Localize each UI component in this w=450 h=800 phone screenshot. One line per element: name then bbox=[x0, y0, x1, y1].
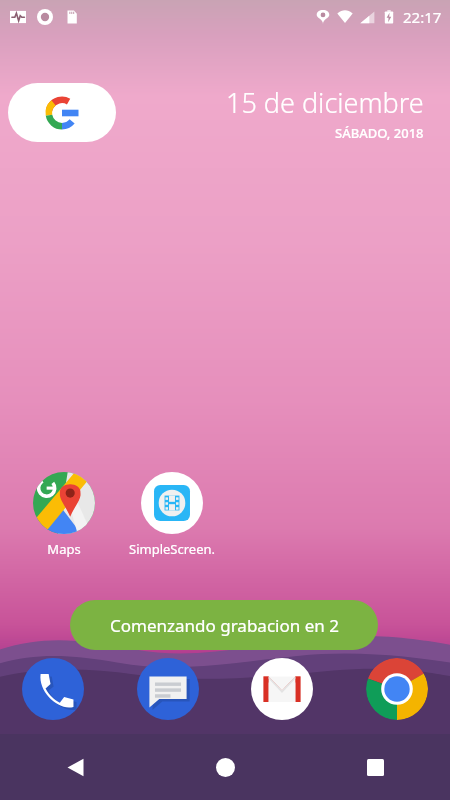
button[interactable]: Maps bbox=[20, 472, 108, 558]
staticText: 22:17 bbox=[403, 7, 442, 27]
staticText: SÁBADO, 2018 bbox=[335, 124, 424, 142]
button[interactable]: Phone bbox=[22, 658, 84, 720]
button[interactable]: Gmail bbox=[251, 658, 313, 720]
staticText: Maps bbox=[47, 540, 81, 558]
button[interactable]: 15 de diciembre bbox=[226, 84, 424, 142]
button[interactable]: Back bbox=[0, 734, 150, 800]
button[interactable]: Messages bbox=[137, 658, 199, 720]
staticText: 15 de diciembre bbox=[226, 84, 424, 121]
button[interactable]: Google Search bbox=[8, 83, 116, 142]
button[interactable]: Chrome bbox=[366, 658, 428, 720]
staticText: SimpleScreen.. bbox=[128, 540, 216, 558]
staticText: Comenzando grabacion en 2 bbox=[110, 614, 339, 637]
button[interactable]: Home bbox=[150, 734, 300, 800]
button[interactable]: Recent apps bbox=[300, 734, 450, 800]
button[interactable]: Comenzando grabacion en 2 bbox=[70, 600, 378, 650]
button[interactable]: SimpleScreen.. bbox=[128, 472, 216, 558]
